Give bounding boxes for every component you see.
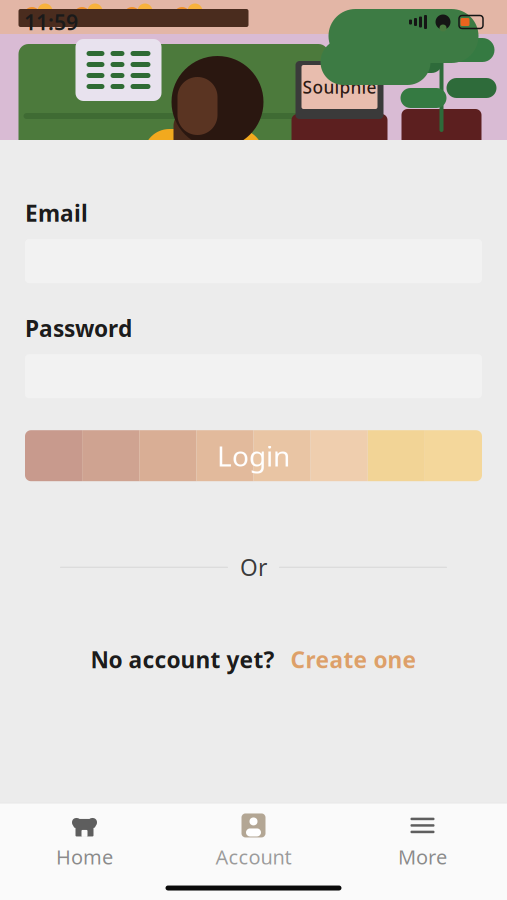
button[interactable]: No account yet? <box>25 638 482 680</box>
staticText: No account yet? <box>90 644 274 674</box>
staticText: Password <box>25 313 132 343</box>
staticText: Soulphie <box>302 75 376 98</box>
button[interactable]: Login <box>25 430 482 481</box>
staticText: Or <box>240 552 267 582</box>
button[interactable]: More <box>338 803 507 876</box>
staticText: 11:59 <box>24 8 78 36</box>
staticText: Create one <box>290 644 416 674</box>
staticText: Email <box>25 198 88 228</box>
staticText: Account <box>215 843 291 870</box>
staticText: Login <box>217 437 290 474</box>
button[interactable]: Account <box>169 803 338 876</box>
button[interactable]: Home <box>0 803 169 876</box>
staticText: More <box>398 843 447 870</box>
staticText: Home <box>56 843 113 870</box>
